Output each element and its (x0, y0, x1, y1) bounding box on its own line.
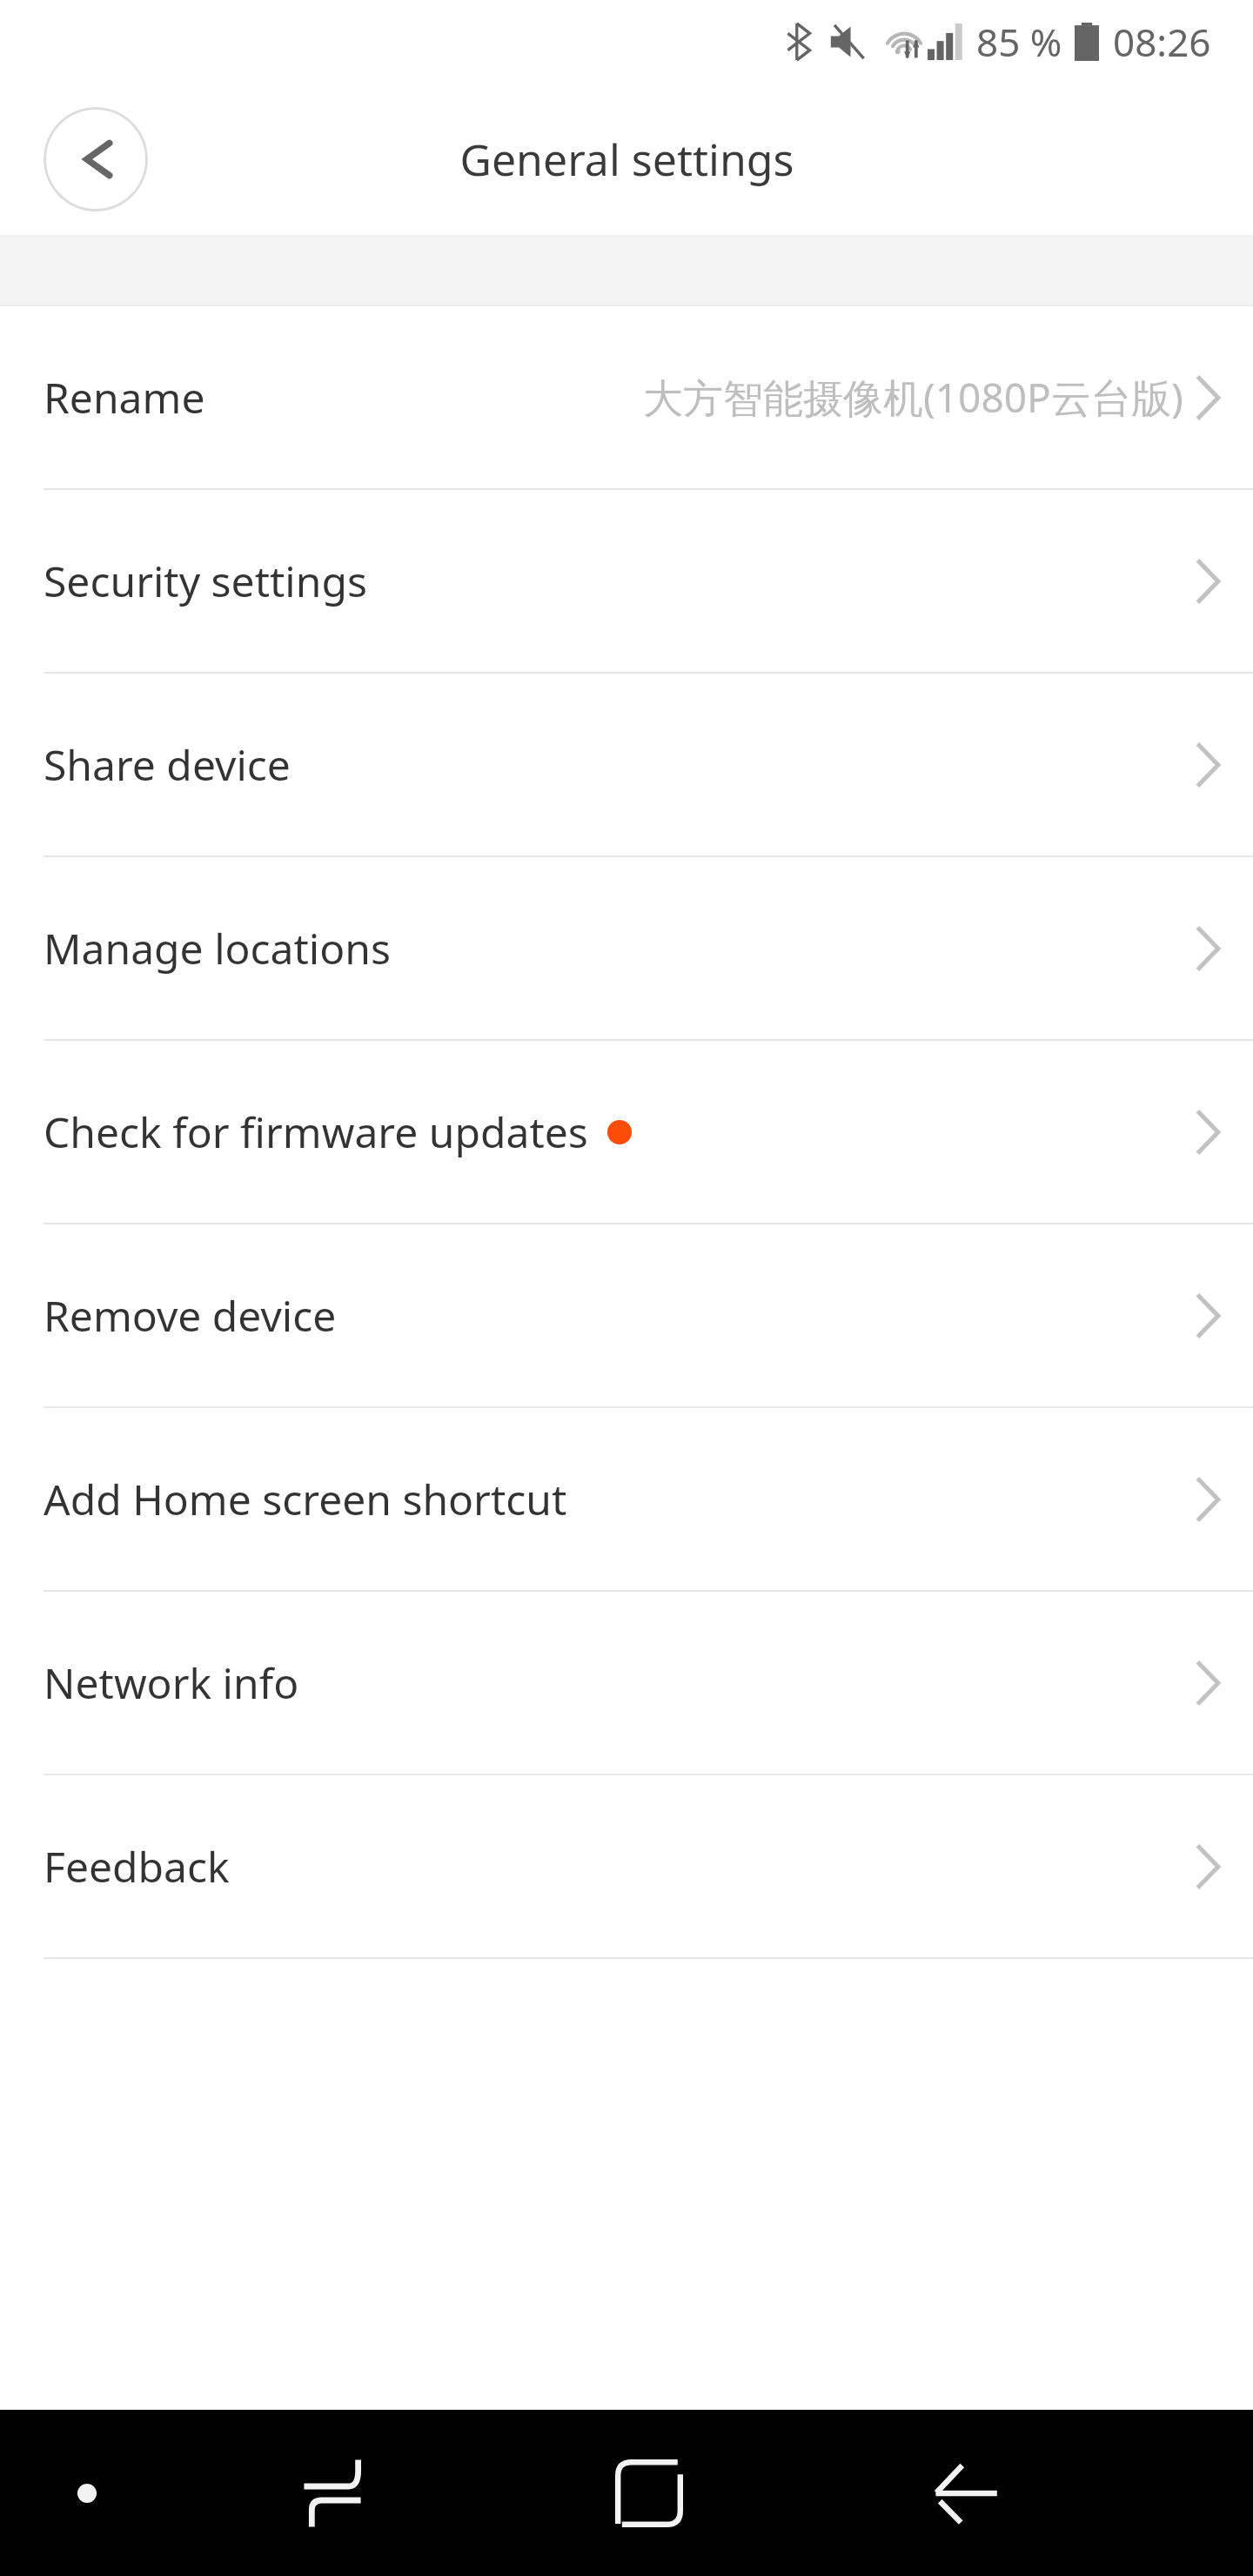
button[interactable]: Back (44, 107, 148, 211)
button[interactable]: Add Home screen shortcut (0, 1408, 1253, 1590)
button[interactable]: Home (491, 2410, 807, 2576)
staticText: 08:26 (1113, 16, 1211, 68)
button[interactable]: Share device (0, 674, 1253, 855)
button[interactable]: Security settings (0, 490, 1253, 672)
staticText: Network info (44, 1654, 299, 1711)
staticText: Share device (44, 736, 291, 793)
staticText: General settings (459, 130, 794, 189)
staticText: Rename (44, 369, 205, 426)
button[interactable]: Manage locations (0, 857, 1253, 1039)
staticText: 85 % (976, 16, 1062, 68)
staticText: Add Home screen shortcut (44, 1471, 567, 1527)
button[interactable]: Network info (0, 1592, 1253, 1774)
button[interactable]: Back (807, 2410, 1122, 2576)
staticText: 大方智能摄像机(1080P云台版) (643, 370, 1183, 425)
button[interactable]: Feedback (0, 1775, 1253, 1957)
button[interactable]: Rename (0, 306, 1253, 488)
button[interactable]: Recents (174, 2410, 491, 2576)
button[interactable]: Remove device (0, 1224, 1253, 1406)
button[interactable]: Assist (0, 2410, 174, 2576)
staticText: Check for firmware updates (44, 1104, 588, 1160)
staticText: Feedback (44, 1838, 230, 1895)
staticText: Security settings (44, 553, 367, 609)
button[interactable]: Check for firmware updates (0, 1041, 1253, 1223)
staticText: Manage locations (44, 920, 391, 976)
staticText: Remove device (44, 1287, 337, 1344)
